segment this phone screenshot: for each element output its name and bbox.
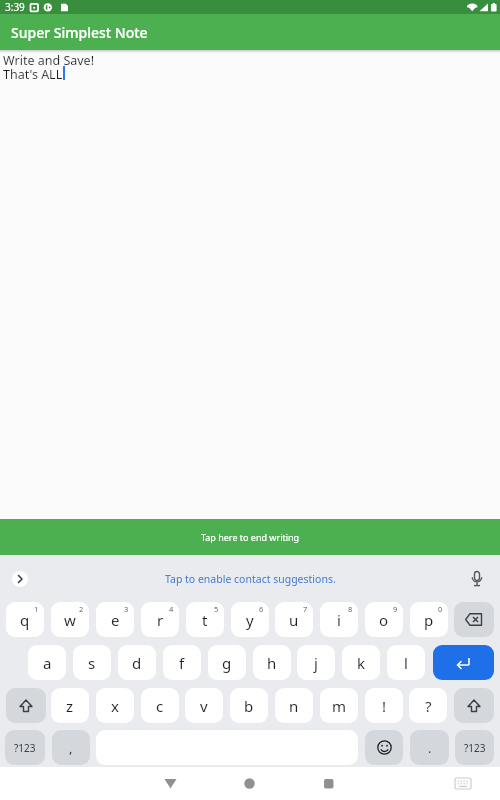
button[interactable]: h [253, 645, 291, 680]
staticText: s [88, 653, 96, 673]
button[interactable]: Tap to enable contact suggestions. [165, 572, 336, 586]
button[interactable] [235, 769, 265, 799]
staticText: q [20, 610, 30, 630]
button[interactable] [433, 645, 494, 680]
staticText: 2 [79, 604, 84, 614]
button[interactable]: t [186, 602, 224, 637]
button[interactable]: o [365, 602, 403, 637]
staticText: 0 [438, 604, 443, 614]
staticText: u [289, 610, 299, 630]
button[interactable]: x [96, 688, 134, 723]
staticText: b [244, 696, 254, 716]
button[interactable]: e [96, 602, 134, 637]
staticText: h [267, 653, 277, 673]
staticText: 3 [124, 604, 129, 614]
staticText: ?123 [464, 741, 486, 755]
staticText: 4 [169, 604, 174, 614]
staticText: v [200, 696, 208, 716]
button[interactable] [468, 570, 486, 588]
button[interactable]: Write and Save! That's ALL! [0, 50, 500, 519]
button[interactable]: ?123 [5, 730, 45, 765]
button[interactable]: b [230, 688, 268, 723]
staticText: ! [382, 696, 387, 716]
button[interactable] [365, 730, 403, 765]
staticText: 1 [34, 604, 39, 614]
staticText: r [157, 610, 164, 630]
staticText: g [222, 653, 232, 673]
staticText: ?123 [14, 741, 36, 755]
staticText: 7 [303, 604, 308, 614]
staticText: j [314, 653, 318, 673]
button[interactable] [454, 688, 494, 723]
staticText: ? [425, 696, 432, 716]
button[interactable]: c [141, 688, 179, 723]
staticText: e [111, 610, 120, 630]
button[interactable]: , [52, 730, 90, 765]
button[interactable] [6, 688, 46, 723]
button[interactable]: i [320, 602, 358, 637]
button[interactable]: ?123 [455, 730, 494, 765]
staticText: f [179, 653, 185, 673]
button[interactable]: j [297, 645, 335, 680]
staticText: 9 [393, 604, 398, 614]
staticText: Write and Save! That's ALL! [3, 52, 95, 82]
staticText: i [337, 610, 341, 630]
button[interactable]: l [387, 645, 425, 680]
button[interactable]: v [185, 688, 223, 723]
staticText: 8 [348, 604, 353, 614]
button[interactable]: ! [365, 688, 403, 723]
staticText: 3:39 [5, 0, 25, 14]
button[interactable] [314, 769, 344, 799]
staticText: n [289, 696, 299, 716]
button[interactable]: n [275, 688, 313, 723]
button[interactable]: a [28, 645, 66, 680]
button[interactable]: . [410, 730, 449, 765]
button[interactable] [450, 773, 476, 795]
staticText: x [111, 696, 119, 716]
staticText: c [156, 696, 164, 716]
staticText: m [332, 696, 347, 716]
staticText: , [69, 739, 73, 757]
button[interactable]: k [342, 645, 380, 680]
button[interactable]: w [51, 602, 89, 637]
button[interactable]: s [73, 645, 111, 680]
staticText: t [202, 610, 208, 630]
button[interactable]: g [208, 645, 246, 680]
staticText: 6 [259, 604, 264, 614]
button[interactable] [12, 571, 28, 587]
button[interactable]: q [6, 602, 44, 637]
staticText: 5 [214, 604, 219, 614]
staticText: Super Simplest Note [11, 23, 148, 42]
staticText: z [66, 696, 74, 716]
button[interactable]: y [231, 602, 269, 637]
button[interactable]: z [51, 688, 89, 723]
button[interactable]: Tap here to end writing [0, 519, 500, 555]
button[interactable]: f [163, 645, 201, 680]
button[interactable]: p [410, 602, 448, 637]
staticText: p [424, 610, 434, 630]
staticText: l [404, 653, 408, 673]
staticText: Tap here to end writing [201, 531, 300, 543]
staticText: y [246, 610, 254, 630]
staticText: . [428, 739, 432, 757]
staticText: w [64, 610, 76, 630]
button[interactable]: m [320, 688, 358, 723]
staticText: d [132, 653, 142, 673]
button[interactable]: ? [409, 688, 447, 723]
staticText: k [357, 653, 366, 673]
staticText: o [379, 610, 389, 630]
button[interactable]: d [118, 645, 156, 680]
staticText: a [43, 653, 52, 673]
button[interactable]: r [141, 602, 179, 637]
button[interactable]: u [275, 602, 313, 637]
button[interactable] [454, 602, 494, 637]
button[interactable] [156, 769, 186, 799]
